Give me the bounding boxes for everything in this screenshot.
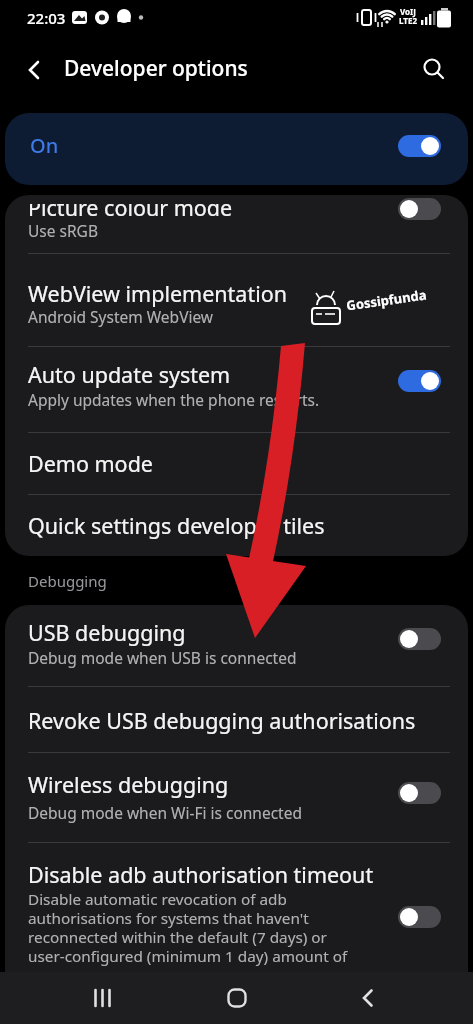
- button[interactable]: [5, 752, 468, 842]
- button[interactable]: [5, 432, 468, 494]
- button[interactable]: [5, 253, 468, 346]
- button[interactable]: [214, 976, 260, 1020]
- staticText: Use sRGB: [28, 220, 98, 241]
- staticText: Android System WebView: [28, 306, 214, 327]
- staticText: Disable automatic revocation of adb auth…: [28, 889, 348, 966]
- button[interactable]: [5, 195, 468, 253]
- staticText: Apply updates when the phone restarts.: [28, 389, 320, 410]
- button[interactable]: [345, 976, 391, 1020]
- staticText: USB debugging: [28, 618, 186, 647]
- staticText: Picture colour mode: [28, 204, 233, 219]
- button[interactable]: [398, 370, 441, 392]
- button[interactable]: [5, 346, 468, 432]
- button[interactable]: [5, 494, 468, 556]
- button[interactable]: [398, 198, 441, 220]
- staticText: Revoke USB debugging authorisations: [28, 706, 416, 735]
- staticText: Quick settings developer tiles: [28, 511, 325, 540]
- button[interactable]: [5, 842, 468, 972]
- button[interactable]: [398, 906, 441, 928]
- staticText: Debug mode when Wi-Fi is connected: [28, 802, 302, 823]
- staticText: Gossipfunda: [345, 285, 428, 315]
- staticText: Developer options: [64, 54, 248, 83]
- button[interactable]: [412, 47, 456, 91]
- staticText: Disable adb authorisation timeout: [28, 860, 374, 889]
- button[interactable]: On: [5, 113, 468, 185]
- button[interactable]: [398, 782, 441, 804]
- button[interactable]: [80, 976, 126, 1020]
- staticText: Debugging: [28, 571, 107, 591]
- staticText: Debug mode when USB is connected: [28, 647, 297, 668]
- staticText: 22:03: [27, 8, 66, 28]
- button[interactable]: [5, 605, 468, 686]
- staticText: LTE2: [399, 15, 417, 26]
- button[interactable]: [398, 628, 441, 650]
- staticText: Wireless debugging: [28, 770, 229, 799]
- button[interactable]: [398, 135, 441, 157]
- staticText: Auto update system: [28, 360, 231, 389]
- staticText: VoIJ: [400, 6, 416, 17]
- staticText: On: [30, 132, 59, 159]
- staticText: Demo mode: [28, 449, 153, 478]
- button[interactable]: [5, 686, 468, 752]
- staticText: WebView implementation: [28, 279, 288, 308]
- button[interactable]: [14, 49, 56, 91]
